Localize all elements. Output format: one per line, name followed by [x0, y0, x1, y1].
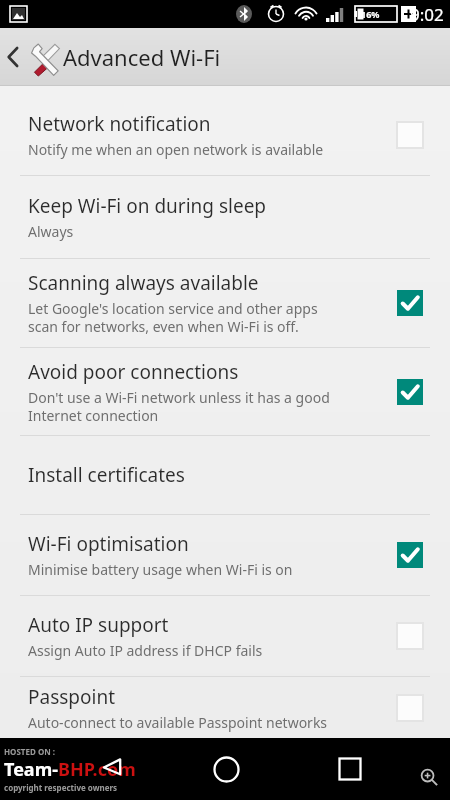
staticText: Assign Auto IP address if DHCP fails: [28, 641, 263, 660]
staticText: 9:02: [410, 3, 444, 26]
button[interactable]: Passpoint: [0, 677, 450, 738]
button[interactable]: Checked: [388, 533, 432, 577]
staticText: Network notification: [28, 111, 211, 137]
button[interactable]: Back: [0, 28, 70, 86]
button[interactable]: Unchecked: [388, 113, 432, 157]
staticText: Passpoint: [28, 684, 116, 710]
button[interactable]: Checked: [388, 281, 432, 325]
button[interactable]: Network notification: [0, 94, 450, 175]
button[interactable]: Home: [200, 743, 252, 795]
staticText: Advanced Wi-Fi: [63, 42, 221, 72]
staticText: Notify me when an open network is availa…: [28, 140, 324, 159]
button[interactable]: Keep Wi-Fi on during sleep: [0, 176, 450, 258]
staticText: Always: [28, 222, 74, 241]
staticText: Avoid poor connections: [28, 359, 239, 385]
staticText: Team-: [4, 757, 58, 782]
staticText: Install certificates: [28, 462, 185, 488]
staticText: Scanning always available: [28, 270, 259, 296]
staticText: Auto IP support: [28, 612, 169, 638]
button[interactable]: Wi-Fi optimisation: [0, 515, 450, 595]
button[interactable]: Auto IP support: [0, 596, 450, 676]
button[interactable]: Zoom: [412, 760, 446, 794]
staticText: Auto-connect to available Passpoint netw…: [28, 713, 328, 732]
staticText: BHP.com: [58, 757, 136, 782]
button[interactable]: Unchecked: [388, 686, 432, 730]
staticText: Let Google's location service and other …: [28, 299, 318, 336]
staticText: 16%: [361, 8, 380, 20]
button[interactable]: Install certificates: [0, 436, 450, 514]
staticText: Don't use a Wi-Fi network unless it has …: [28, 388, 330, 425]
staticText: Wi-Fi optimisation: [28, 531, 189, 557]
button[interactable]: Avoid poor connections: [0, 348, 450, 435]
button[interactable]: Back: [88, 744, 138, 794]
staticText: Keep Wi-Fi on during sleep: [28, 193, 267, 219]
button[interactable]: Scanning always available: [0, 259, 450, 347]
staticText: Minimise battery usage when Wi-Fi is on: [28, 560, 293, 579]
staticText: copyright respective owners: [4, 782, 118, 793]
staticText: HOSTED ON :: [4, 746, 56, 757]
button[interactable]: Recent apps: [325, 744, 375, 794]
button[interactable]: Unchecked: [388, 614, 432, 658]
button[interactable]: Checked: [388, 370, 432, 414]
